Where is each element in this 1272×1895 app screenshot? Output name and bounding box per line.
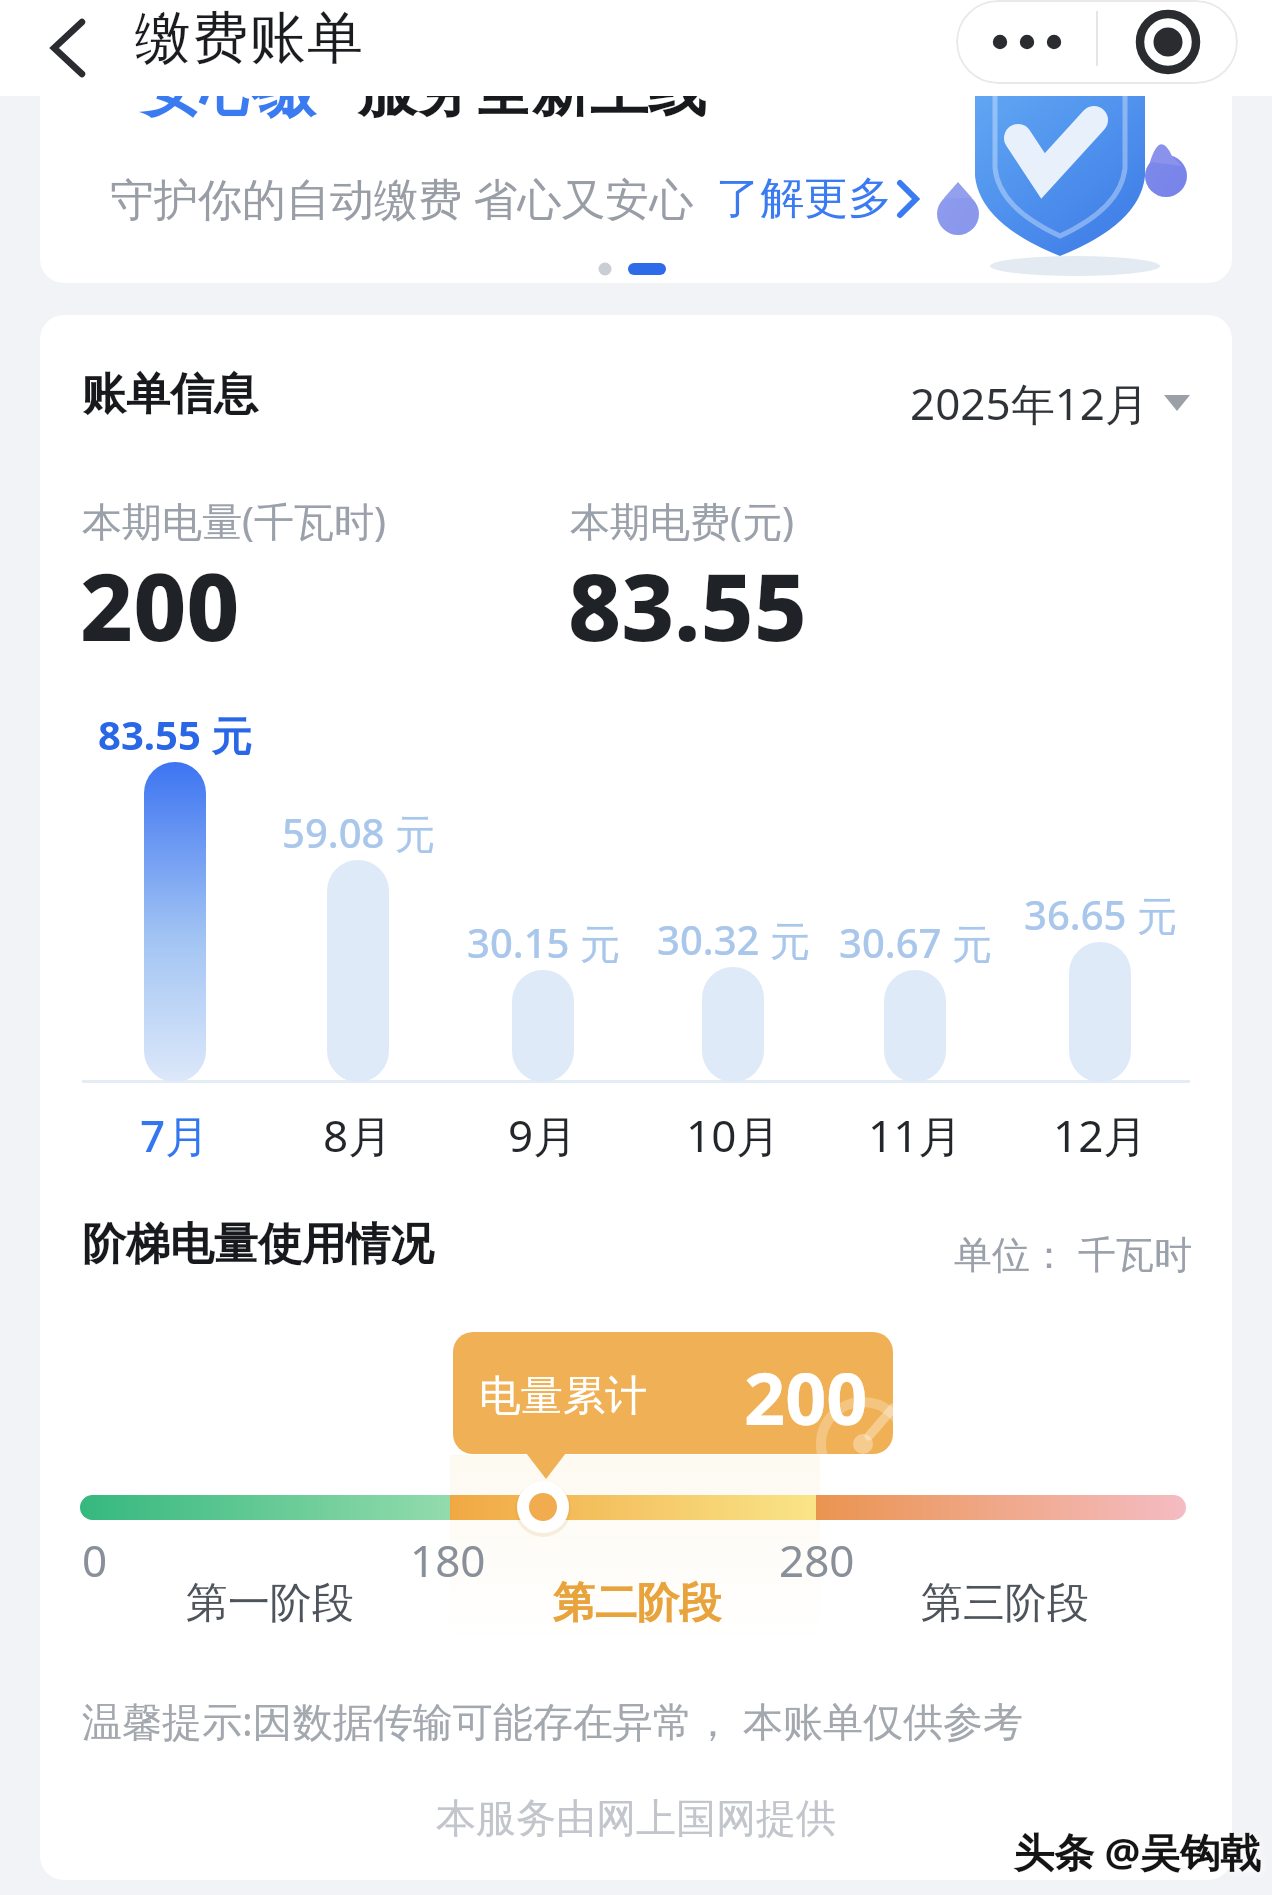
staticText: 8月 — [323, 1105, 393, 1165]
staticText: 9月 — [508, 1105, 578, 1165]
button[interactable]: 10月 — [633, 1105, 833, 1165]
staticText: 36.65 元 — [1024, 887, 1177, 942]
staticText: 电量累计 — [479, 1370, 647, 1423]
staticText: 7月 — [140, 1105, 210, 1165]
staticText: 服务全新上线 — [358, 96, 706, 127]
staticText: 缴费账单 — [134, 3, 364, 74]
button[interactable]: 2025年12月 — [890, 373, 1190, 433]
button[interactable]: 7月 — [75, 1105, 275, 1165]
staticText: 83.55 元 — [98, 707, 252, 762]
staticText: 200 — [80, 543, 240, 668]
button[interactable]: 电量累计 — [453, 1332, 893, 1454]
staticText: 83.55 — [568, 543, 807, 668]
staticText: 0 — [82, 1530, 108, 1590]
staticText: 账单信息 — [82, 367, 258, 422]
staticText: 第一阶段 — [186, 1577, 354, 1630]
staticText: 温馨提示:因数据传输可能存在异常， 本账单仅供参考 — [82, 1693, 1024, 1748]
staticText: 本期电量(千瓦时) — [82, 493, 386, 548]
button[interactable] — [956, 0, 1097, 84]
staticText: 本服务由网上国网提供 — [436, 1793, 836, 1843]
staticText: 30.32 元 — [657, 912, 810, 967]
staticText: 11月 — [868, 1105, 963, 1165]
button[interactable]: 12月 — [1000, 1105, 1200, 1165]
staticText: 59.08 元 — [282, 805, 435, 860]
staticText: 本期电费(元) — [570, 493, 794, 548]
staticText: 了解更多 — [716, 171, 892, 226]
button[interactable] — [28, 0, 108, 96]
staticText: 阶梯电量使用情况 — [82, 1217, 434, 1272]
staticText: 守护你的自动缴费 省心又安心 — [110, 168, 694, 228]
staticText: 单位： 千瓦时 — [954, 1227, 1192, 1279]
staticText: 280 — [779, 1530, 855, 1590]
staticText: 10月 — [686, 1105, 781, 1165]
button[interactable] — [1097, 0, 1238, 84]
button[interactable]: 了解更多 — [716, 171, 920, 226]
staticText: 200 — [744, 1348, 868, 1446]
staticText: 30.67 元 — [839, 915, 992, 970]
button[interactable] — [503, 1467, 583, 1547]
button[interactable]: 9月 — [443, 1105, 643, 1165]
staticText: 第二阶段 — [553, 1577, 721, 1630]
staticText: 12月 — [1053, 1105, 1148, 1165]
staticText: 头条 @吴钩戟 — [1014, 1824, 1261, 1879]
button[interactable]: 8月 — [258, 1105, 458, 1165]
staticText: 180 — [410, 1530, 486, 1590]
button[interactable]: 11月 — [815, 1105, 1015, 1165]
staticText: 安心缴 — [142, 96, 316, 127]
staticText: 第三阶段 — [921, 1577, 1089, 1630]
staticText: 2025年12月 — [910, 373, 1150, 433]
staticText: 30.15 元 — [467, 915, 620, 970]
